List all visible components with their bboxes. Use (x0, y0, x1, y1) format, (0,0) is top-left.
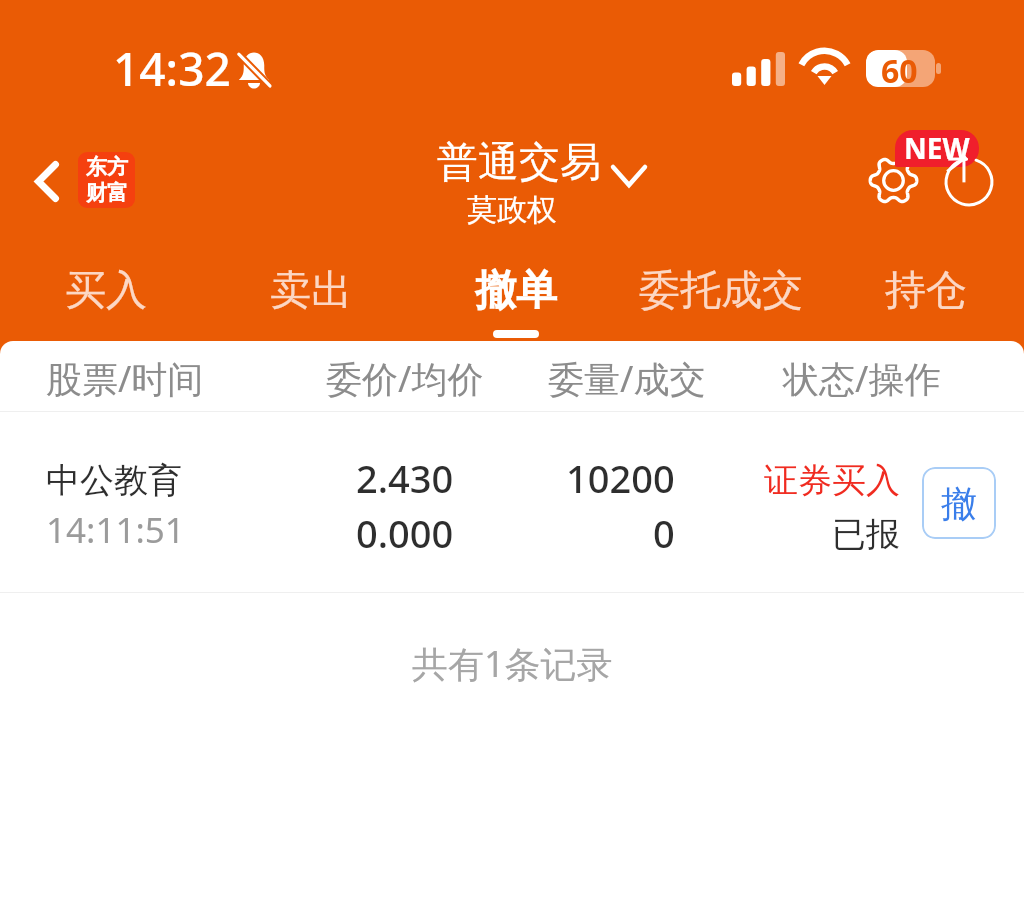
button[interactable]: Refresh (935, 148, 1003, 216)
staticText: 股票/时间 (46, 354, 204, 403)
staticText: 0 (653, 507, 675, 559)
staticText: 60 (881, 50, 918, 86)
staticText: 证券买入 (764, 459, 900, 502)
staticText: 撤 (941, 481, 977, 526)
staticText: 委价/均价 (326, 354, 484, 403)
button[interactable]: Settings (860, 147, 926, 213)
staticText: 持仓 (885, 265, 967, 317)
button[interactable]: 撤单 (413, 255, 618, 338)
staticText: 普通交易 (437, 137, 601, 189)
staticText: 撤单 (475, 265, 557, 317)
staticText: 委托成交 (639, 265, 803, 317)
staticText: 东方 (86, 154, 128, 180)
button[interactable]: 买入 (4, 255, 208, 330)
staticText: 中公教育 (46, 459, 182, 502)
button[interactable]: 委托成交 (618, 255, 823, 330)
button[interactable]: 卖出 (208, 255, 413, 330)
staticText: 卖出 (270, 265, 352, 317)
button[interactable]: Back (12, 146, 82, 216)
staticText: 财富 (86, 180, 128, 206)
staticText: 共有1条记录 (412, 639, 613, 688)
button[interactable]: 中公教育 (0, 412, 1024, 592)
staticText: 14:11:51 (46, 506, 185, 554)
staticText: 买入 (65, 265, 147, 317)
staticText: 委量/成交 (548, 354, 706, 403)
staticText: NEW (904, 130, 970, 166)
staticText: 状态/操作 (783, 354, 941, 403)
staticText: 已报 (832, 513, 900, 556)
staticText: 2.430 (356, 452, 454, 504)
button[interactable]: 持仓 (823, 255, 1024, 330)
staticText: 莫政权 (467, 191, 557, 229)
button[interactable]: 普通交易 (437, 137, 647, 189)
staticText: 14:32 (113, 37, 231, 100)
staticText: 10200 (566, 452, 675, 504)
staticText: 0.000 (356, 507, 454, 559)
button[interactable]: Eastmoney (78, 152, 135, 208)
button[interactable]: Cancel order (922, 467, 996, 539)
